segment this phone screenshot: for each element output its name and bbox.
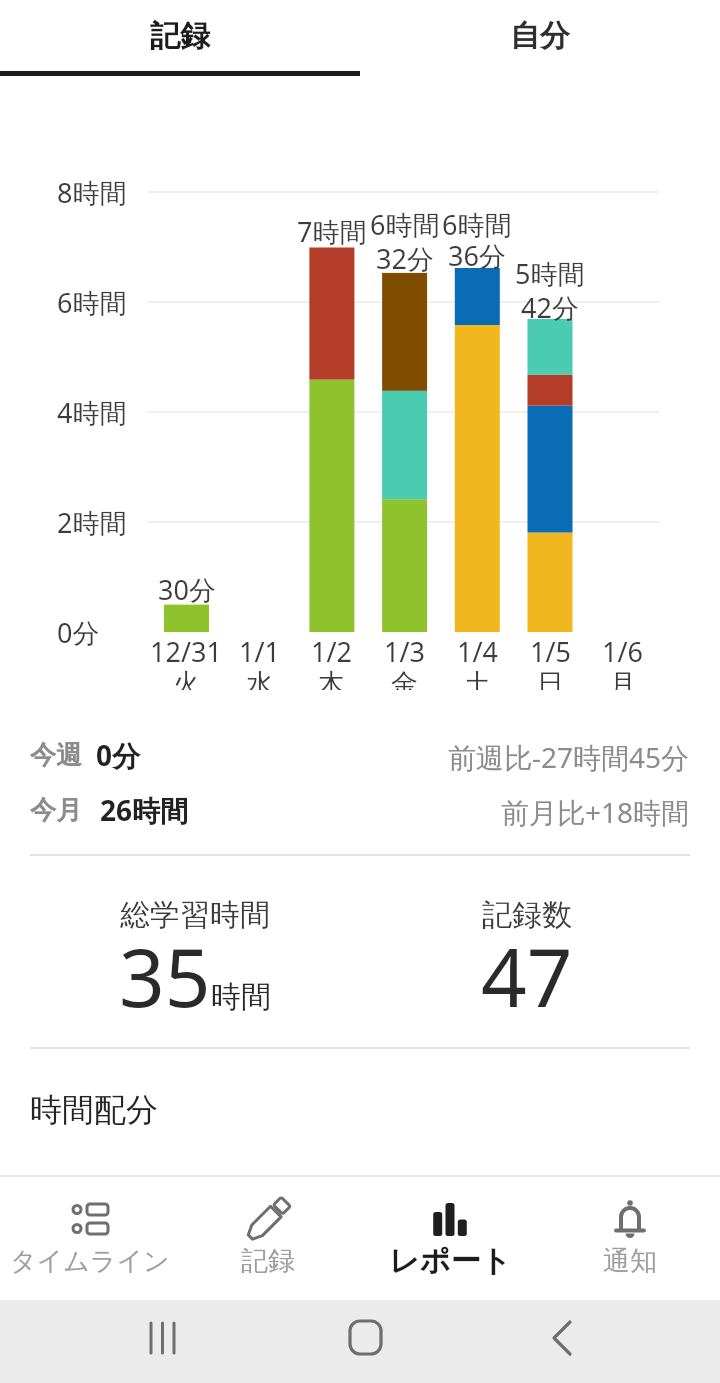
staticText: 1/5 [530,633,571,670]
button[interactable]: 自分 [360,0,720,71]
staticText: 32分 [376,240,434,277]
staticText: 時間配分 [30,1090,158,1130]
staticText: 記録数 [482,896,572,934]
staticText: 今週 [30,739,82,772]
staticText: 1/6 [602,633,643,670]
staticText: 0分 [96,736,141,774]
button[interactable] [120,1300,205,1383]
button[interactable] [323,1300,408,1383]
staticText: 1/2 [311,633,352,670]
staticText: 8時間 [57,174,127,211]
button[interactable]: 通知 [550,1176,710,1300]
button[interactable]: 記録 [188,1176,348,1300]
staticText: 7時間 [297,213,367,250]
staticText: 0分 [57,614,100,651]
staticText: 1/4 [457,633,498,670]
button[interactable] [520,1300,605,1383]
staticText: 6時間 [57,284,127,321]
staticText: 4時間 [57,394,127,431]
staticText: 日 [537,667,564,690]
staticText: 1/1 [239,633,280,670]
staticText: 前週比-27時間45分 [448,738,690,776]
button[interactable]: レポート [370,1176,530,1300]
staticText: 1/3 [384,633,425,670]
staticText: 36分 [448,237,506,274]
staticText: 前月比+18時間 [501,793,690,831]
staticText: 時間 [211,978,271,1016]
staticText: 土 [464,667,491,690]
staticText: 木 [318,667,345,690]
staticText: 記録 [150,17,210,55]
staticText: 42分 [521,289,579,326]
staticText: タイムライン [10,1245,170,1278]
staticText: 47 [481,921,573,1030]
staticText: 金 [391,667,418,690]
staticText: 30分 [158,571,216,608]
staticText: 総学習時間 [120,896,270,934]
staticText: 12/31 [150,633,222,670]
staticText: 6時間 [370,206,440,243]
button[interactable]: タイムライン [10,1176,170,1300]
staticText: 6時間 [442,206,512,243]
staticText: 26時間 [100,791,189,829]
staticText: 今月 [30,794,82,827]
staticText: 記録 [241,1244,295,1278]
staticText: レポート [389,1242,512,1280]
staticText: 火 [173,667,200,690]
button[interactable]: 記録 [0,0,360,71]
staticText: 通知 [603,1244,657,1278]
staticText: 5時間 [515,255,585,292]
staticText: 月 [609,667,636,690]
staticText: 2時間 [57,504,127,541]
staticText: 自分 [510,17,570,55]
staticText: 水 [246,667,273,690]
staticText: 35 [119,921,211,1030]
